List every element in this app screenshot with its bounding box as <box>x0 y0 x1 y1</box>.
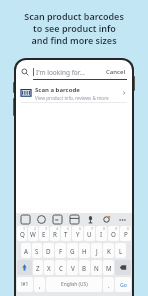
button[interactable]: C <box>55 260 66 275</box>
staticText: to see product info <box>33 22 116 34</box>
button[interactable]: U <box>84 226 95 241</box>
other: Open <box>121 90 127 96</box>
button[interactable]: X <box>44 260 54 275</box>
button[interactable]: S <box>32 243 42 258</box>
staticText: W <box>30 230 36 238</box>
button[interactable]: T <box>61 226 71 241</box>
staticText: G <box>70 247 75 255</box>
button[interactable]: Settings <box>102 215 111 224</box>
staticText: 1 <box>23 226 26 231</box>
button[interactable]: P <box>120 226 131 241</box>
staticText: L <box>119 247 123 255</box>
staticText: View product info, reviews & more <box>35 95 109 101</box>
staticText: , <box>39 281 41 289</box>
staticText: 2 <box>34 226 37 231</box>
staticText: 7 <box>91 226 94 231</box>
staticText: C <box>59 264 63 272</box>
button[interactable]: Cancel <box>105 68 127 76</box>
staticText: P <box>124 230 128 238</box>
button[interactable]: J <box>91 243 102 258</box>
staticText: V <box>71 264 75 272</box>
button[interactable]: H <box>79 243 90 258</box>
staticText: D <box>46 247 51 255</box>
button[interactable]: !#1 <box>17 277 33 292</box>
button[interactable]: W <box>28 226 38 241</box>
button[interactable]: Search <box>16 65 132 79</box>
staticText: K <box>107 247 111 255</box>
button[interactable]: Q <box>17 226 27 241</box>
staticText: Z <box>36 264 40 272</box>
button[interactable]: Emoji <box>37 215 46 224</box>
button[interactable]: More options <box>118 215 127 224</box>
staticText: S <box>35 247 39 255</box>
button[interactable]: I <box>96 226 107 241</box>
button[interactable]: . <box>103 277 114 292</box>
staticText: Scan a barcode <box>35 86 80 94</box>
button[interactable]: Clipboard <box>70 215 79 224</box>
button[interactable]: GIF <box>53 215 62 224</box>
button[interactable]: Voice input <box>86 215 95 224</box>
button[interactable]: D <box>43 243 54 258</box>
staticText: Q <box>20 230 25 238</box>
staticText: Go <box>120 281 127 288</box>
button[interactable]: Z <box>33 260 43 275</box>
staticText: U <box>87 230 92 238</box>
staticText: 3 <box>45 226 48 231</box>
staticText: X <box>47 264 51 272</box>
staticText: I <box>100 230 103 238</box>
button[interactable]: L <box>115 243 126 258</box>
button[interactable]: Scan a barcode <box>16 84 132 102</box>
staticText: 0 <box>127 226 130 231</box>
staticText: H <box>82 247 87 255</box>
staticText: 4 <box>56 226 59 231</box>
staticText: B <box>82 264 87 272</box>
button[interactable]: Backspace <box>115 260 131 275</box>
button[interactable]: R <box>50 226 60 241</box>
staticText: and find more sizes <box>31 34 117 46</box>
staticText: Scan product barcodes <box>24 10 124 22</box>
button[interactable]: Shift <box>17 260 32 275</box>
button[interactable]: English (US) <box>46 277 102 292</box>
button[interactable]: M <box>103 260 114 275</box>
staticText: R <box>53 230 57 238</box>
staticText: 8 <box>103 226 106 231</box>
staticText: . <box>108 281 110 289</box>
staticText: N <box>94 264 99 272</box>
button[interactable]: B <box>79 260 90 275</box>
staticText: T <box>64 230 68 238</box>
button[interactable]: F <box>55 243 66 258</box>
button[interactable]: Y <box>72 226 83 241</box>
other: Search <box>21 68 29 76</box>
button[interactable]: V <box>67 260 78 275</box>
button[interactable]: , <box>34 277 45 292</box>
staticText: 6 <box>79 226 82 231</box>
button[interactable]: K <box>103 243 114 258</box>
staticText: 9 <box>115 226 118 231</box>
button[interactable]: O <box>108 226 119 241</box>
staticText: F <box>59 247 63 255</box>
button[interactable]: A <box>21 243 31 258</box>
staticText: J <box>96 247 98 255</box>
button[interactable]: G <box>67 243 78 258</box>
button[interactable]: E <box>39 226 49 241</box>
staticText: I'm looking for... <box>36 68 85 77</box>
staticText: O <box>111 230 116 238</box>
staticText: Cancel <box>106 68 126 76</box>
staticText: A <box>24 247 28 255</box>
staticText: E <box>42 230 46 238</box>
staticText: 5 <box>67 226 70 231</box>
staticText: English (US) <box>61 281 88 288</box>
button[interactable]: Stickers <box>21 215 30 224</box>
staticText: Y <box>76 230 80 238</box>
staticText: M <box>106 264 112 272</box>
button[interactable]: N <box>91 260 102 275</box>
button[interactable]: Go <box>115 277 131 292</box>
staticText: !#1 <box>21 281 29 288</box>
